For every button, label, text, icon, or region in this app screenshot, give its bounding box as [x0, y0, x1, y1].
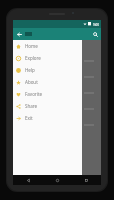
staticText: 9:00: [93, 23, 99, 26]
button[interactable]: Share: [13, 100, 82, 112]
staticText: Favorite: [25, 91, 43, 97]
button[interactable]: Navigate up: [14, 29, 24, 39]
button[interactable]: About: [13, 76, 82, 88]
button[interactable]: Home: [43, 175, 72, 185]
staticText: Home: [25, 43, 38, 49]
staticText: Help: [25, 67, 35, 73]
button[interactable]: Favorite: [13, 88, 82, 100]
button[interactable]: Back: [13, 175, 43, 185]
button[interactable]: Close navigation drawer: [82, 40, 101, 175]
button[interactable]: Search: [90, 29, 100, 39]
button[interactable]: Explore: [13, 52, 82, 64]
button[interactable]: Recents: [72, 175, 101, 185]
staticText: Share: [25, 103, 38, 109]
staticText: Exit: [25, 115, 33, 121]
staticText: Explore: [25, 55, 41, 61]
button[interactable]: Exit: [13, 112, 82, 124]
button[interactable]: Home: [13, 40, 82, 52]
button[interactable]: Help: [13, 64, 82, 76]
staticText: About: [25, 79, 38, 85]
